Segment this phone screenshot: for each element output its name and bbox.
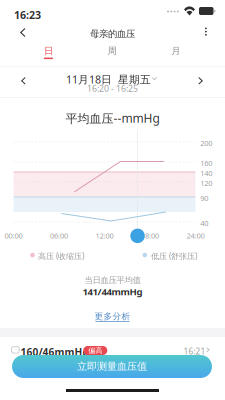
button[interactable]: 更多分析 — [82, 311, 142, 325]
staticText: 低压 (舒张压) — [151, 251, 197, 261]
staticText: 更多分析 — [94, 311, 130, 322]
button[interactable]: 周 — [82, 44, 142, 66]
staticText: 立即测量血压值 — [77, 360, 147, 373]
staticText: 140 — [200, 168, 212, 178]
button[interactable]: 160/46mmHg — [0, 339, 225, 365]
staticText: 16:23 — [14, 7, 41, 22]
button[interactable]: Previous day — [11, 68, 37, 94]
button[interactable]: Back — [4, 22, 40, 44]
staticText: 母亲的血压 — [90, 28, 135, 40]
staticText: 200 — [200, 138, 212, 148]
staticText: 40 — [200, 218, 208, 228]
staticText: 16:20 - 16:25 — [87, 82, 138, 94]
button[interactable]: More options — [194, 22, 222, 44]
staticText: 11月18日 星期五 — [66, 72, 151, 86]
staticText: 141/44mmHg — [82, 285, 142, 298]
staticText: 平均血压--mmHg — [65, 110, 159, 126]
staticText: 24:00 — [186, 230, 204, 241]
staticText: 高压 (收缩压) — [38, 251, 84, 261]
staticText: 16:21 — [183, 346, 205, 357]
staticText: 120 — [200, 178, 212, 188]
button[interactable]: 月 — [146, 44, 206, 66]
staticText: 12:00 — [95, 230, 113, 241]
staticText: 160/46mmHg — [20, 345, 88, 359]
button[interactable]: Next day — [188, 68, 214, 94]
staticText: 日 — [44, 45, 53, 57]
button[interactable]: 立即测量血压值 — [12, 355, 212, 378]
staticText: 周 — [107, 45, 116, 57]
staticText: 当日血压平均值 — [84, 275, 140, 286]
staticText: 月 — [171, 45, 180, 57]
staticText: 18:00 — [141, 230, 159, 241]
staticText: 偏高 — [88, 346, 102, 355]
staticText: 90 — [200, 193, 208, 203]
staticText: 06:00 — [50, 230, 68, 241]
staticText: 00:00 — [5, 230, 23, 241]
staticText: 160 — [200, 158, 212, 168]
button[interactable]: 日 — [18, 44, 78, 66]
